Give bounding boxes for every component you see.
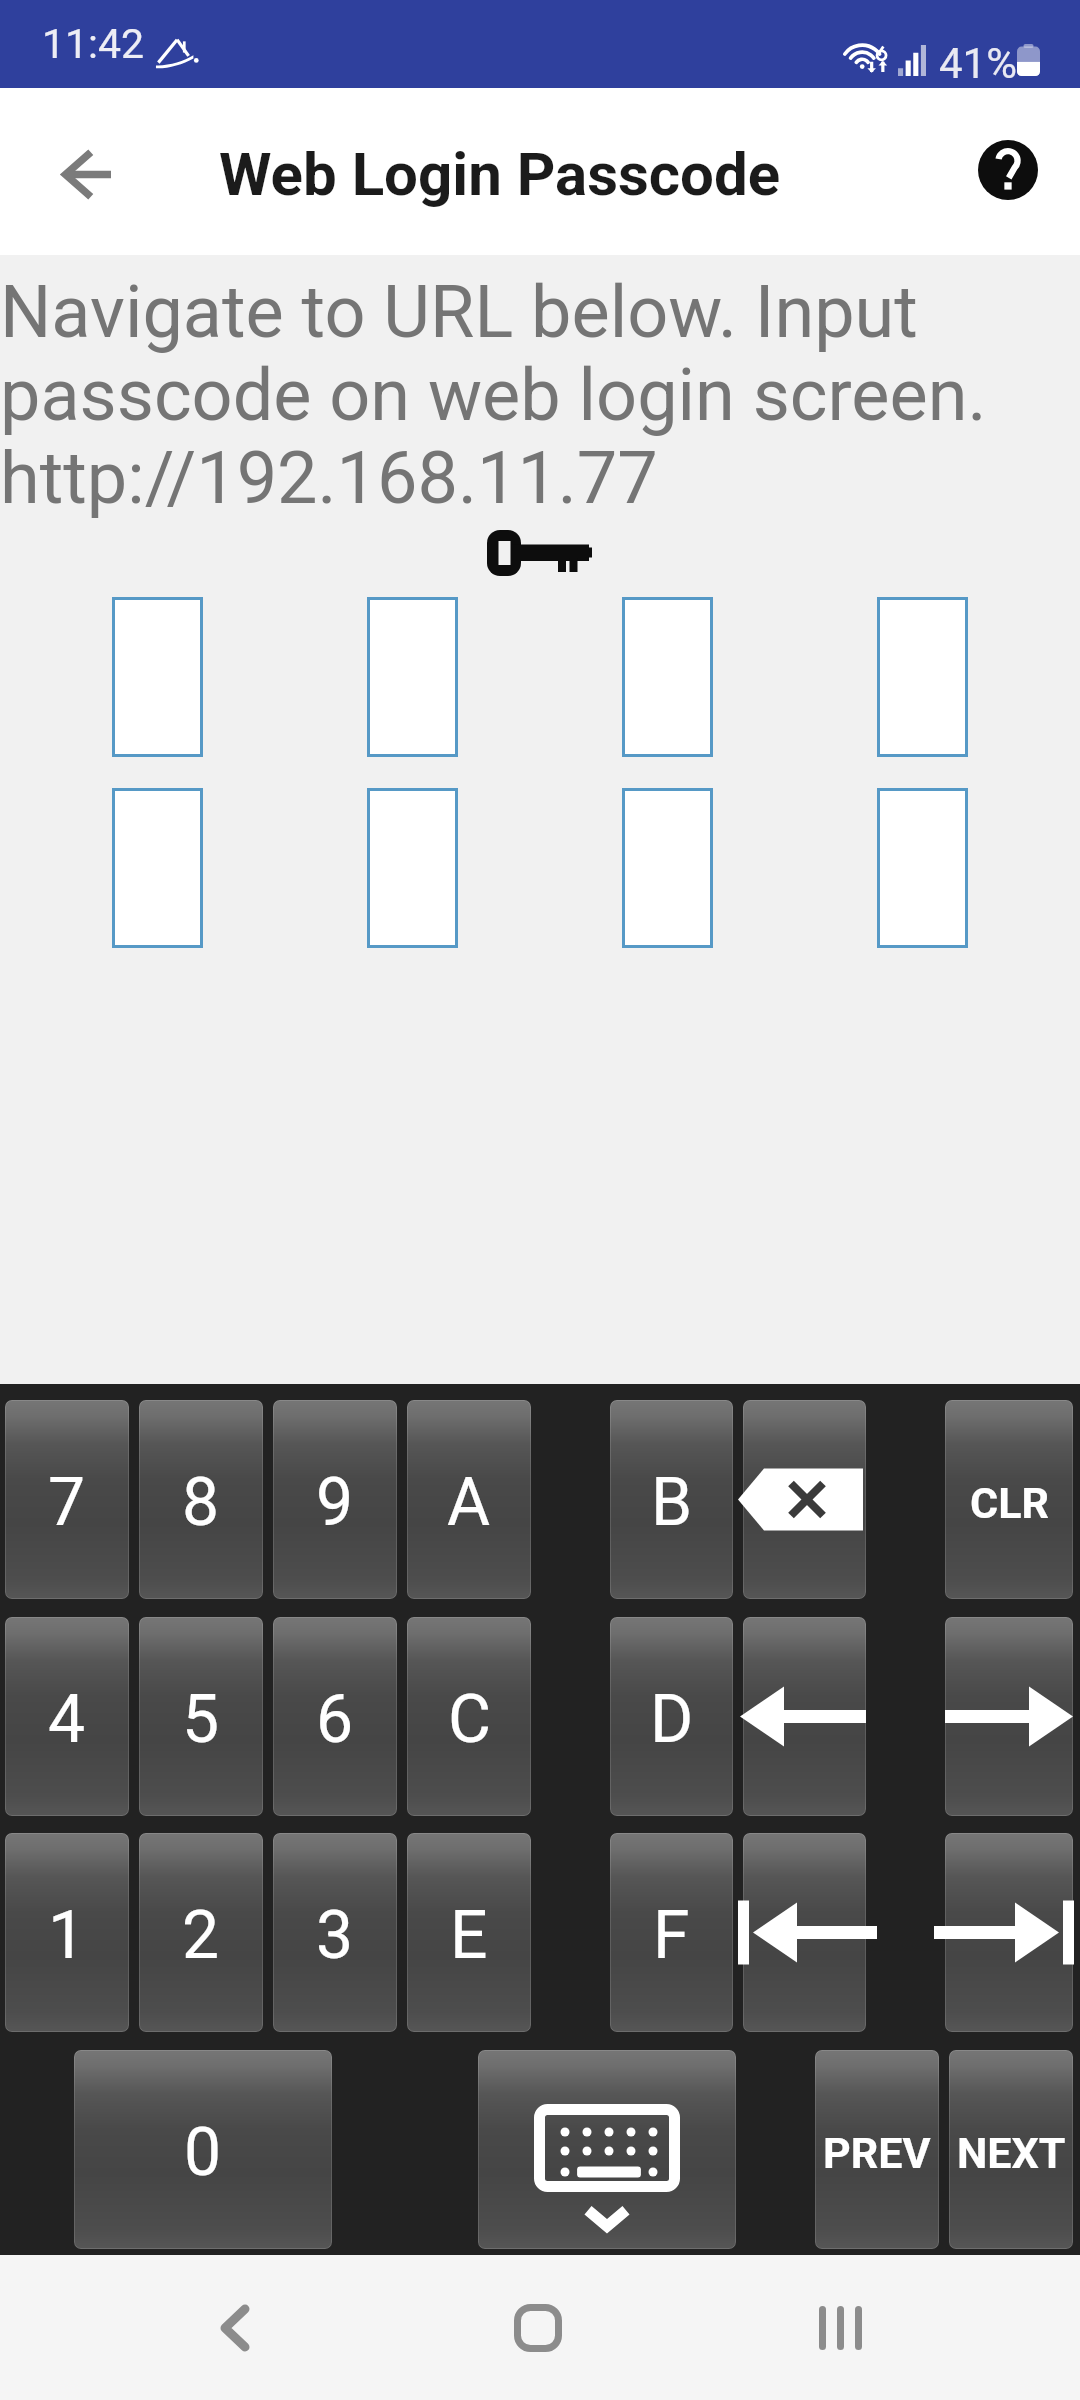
staticText: 41%	[939, 39, 1017, 88]
button[interactable]: Move to start	[743, 1833, 866, 2032]
button[interactable]: Recent apps	[750, 2268, 930, 2388]
staticText: Navigate to URL below. Input passcode on…	[0, 270, 1080, 520]
staticText: PREV	[823, 2128, 931, 2178]
staticText: 11:42	[42, 20, 145, 68]
button[interactable]: CLR	[945, 1400, 1073, 1599]
button[interactable]: 7	[5, 1400, 129, 1599]
button[interactable]: E	[407, 1833, 531, 2032]
button[interactable]: Back	[145, 2268, 325, 2388]
staticText: 5	[182, 1681, 220, 1758]
staticText: E	[450, 1897, 488, 1974]
button[interactable]: Hide keyboard	[478, 2050, 736, 2249]
staticText: 0	[184, 2114, 222, 2191]
button[interactable]: 8	[139, 1400, 263, 1599]
button[interactable]: Passcode digit 1	[112, 597, 203, 757]
button[interactable]: Passcode digit 8	[877, 788, 968, 948]
button[interactable]: Passcode digit 5	[112, 788, 203, 948]
button[interactable]: Home	[448, 2268, 628, 2388]
button[interactable]: 4	[5, 1617, 129, 1816]
button[interactable]: C	[407, 1617, 531, 1816]
button[interactable]: 0	[74, 2050, 332, 2249]
staticText: 6	[316, 1681, 354, 1758]
staticText: F	[653, 1897, 690, 1974]
button[interactable]: PREV	[815, 2050, 939, 2249]
button[interactable]: B	[610, 1400, 733, 1599]
staticText: 3	[316, 1897, 354, 1974]
button[interactable]: Move right	[945, 1617, 1073, 1816]
staticText: 9	[316, 1464, 354, 1541]
staticText: B	[651, 1464, 693, 1541]
staticText: CLR	[970, 1478, 1049, 1528]
staticText: C	[448, 1681, 491, 1758]
button[interactable]: Help	[960, 116, 1056, 224]
button[interactable]: A	[407, 1400, 531, 1599]
button[interactable]: Passcode digit 4	[877, 597, 968, 757]
button[interactable]: Move to end	[945, 1833, 1073, 2032]
staticText: Web Login Passcode	[219, 139, 781, 209]
button[interactable]: 5	[139, 1617, 263, 1816]
button[interactable]: Passcode digit 2	[367, 597, 458, 757]
staticText: 8	[182, 1464, 220, 1541]
staticText: 1	[48, 1897, 86, 1974]
button[interactable]: NEXT	[949, 2050, 1073, 2249]
staticText: 4	[48, 1681, 86, 1758]
button[interactable]: Passcode digit 6	[367, 788, 458, 948]
staticText: 7	[48, 1464, 86, 1541]
button[interactable]: D	[610, 1617, 733, 1816]
staticText: D	[650, 1681, 694, 1758]
button[interactable]: Passcode digit 7	[622, 788, 713, 948]
button[interactable]: 6	[273, 1617, 397, 1816]
button[interactable]: 1	[5, 1833, 129, 2032]
button[interactable]: 9	[273, 1400, 397, 1599]
button[interactable]: Passcode digit 3	[622, 597, 713, 757]
staticText: 2	[182, 1897, 220, 1974]
button[interactable]: Back	[38, 114, 134, 234]
button[interactable]: Move left	[743, 1617, 866, 1816]
staticText: NEXT	[957, 2128, 1066, 2178]
staticText: A	[447, 1464, 491, 1541]
button[interactable]: 2	[139, 1833, 263, 2032]
button[interactable]: Backspace	[743, 1400, 866, 1599]
button[interactable]: 3	[273, 1833, 397, 2032]
button[interactable]: F	[610, 1833, 733, 2032]
